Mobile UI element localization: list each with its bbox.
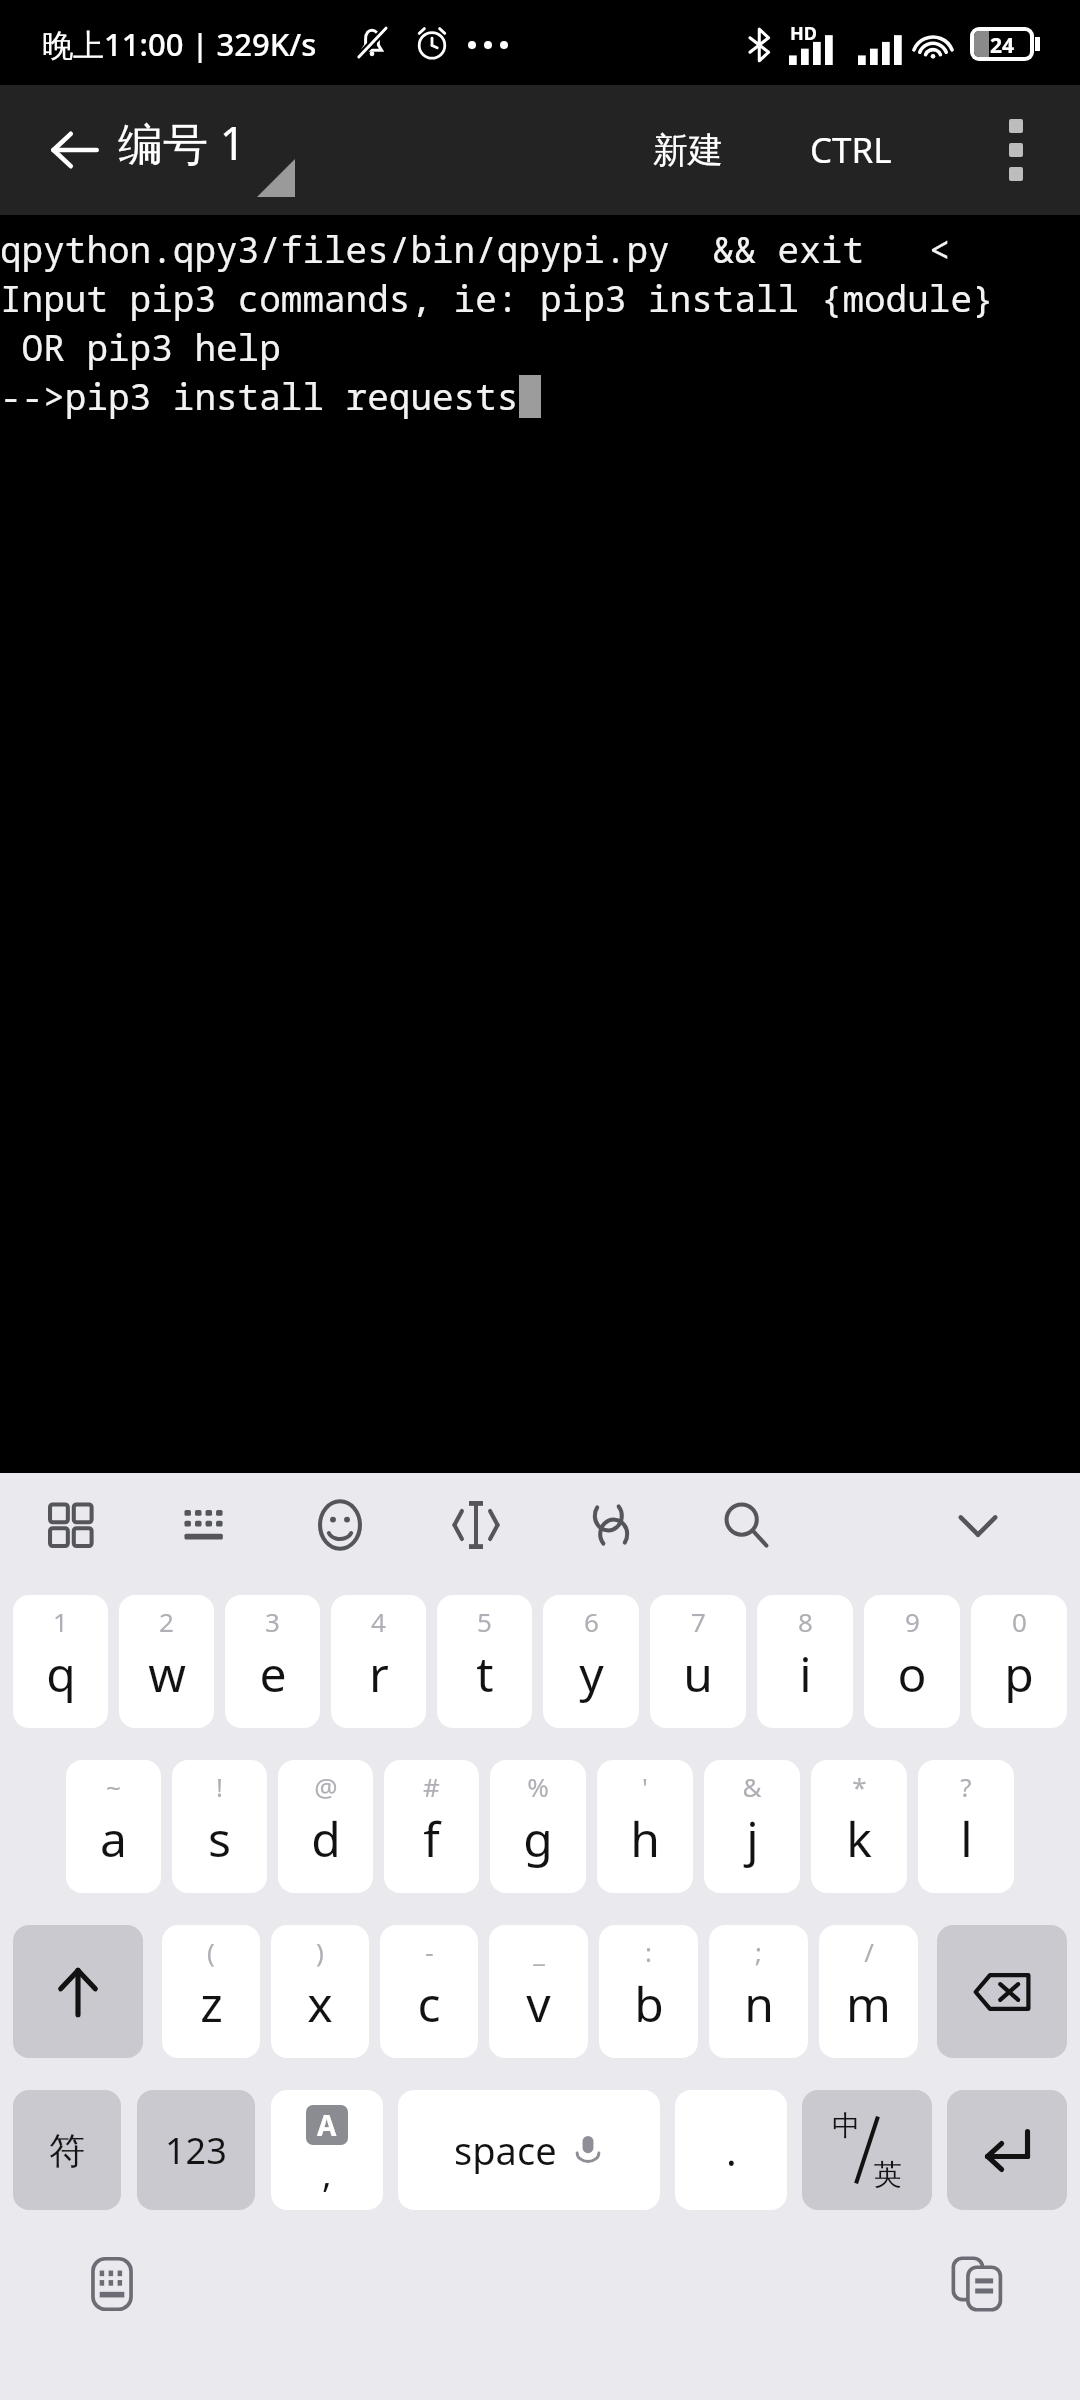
staticText: o [897, 1641, 927, 1706]
button[interactable]: A [271, 2090, 383, 2210]
button[interactable]: 5 [437, 1595, 532, 1728]
button[interactable]: Backspace [937, 1925, 1067, 2058]
button[interactable]: 3 [225, 1595, 320, 1728]
staticText: q [46, 1641, 76, 1706]
staticText: v [526, 1971, 551, 2036]
staticText: ' [642, 1769, 648, 1804]
staticText: m [846, 1971, 891, 2036]
staticText: l [960, 1806, 973, 1871]
staticText: w [148, 1641, 186, 1706]
staticText: i [799, 1641, 812, 1706]
button[interactable]: ! [172, 1760, 267, 1893]
staticText: g [523, 1806, 553, 1871]
button[interactable]: Keyboard [157, 1477, 253, 1573]
button[interactable]: Shift [13, 1925, 143, 2058]
button[interactable]: Clipboard [563, 1477, 659, 1573]
staticText: : [645, 1934, 652, 1969]
button[interactable]: 符 [13, 2090, 121, 2210]
staticText: e [259, 1641, 287, 1706]
staticText: ; [755, 1934, 762, 1969]
staticText: CTRL [810, 126, 892, 174]
button[interactable]: - [380, 1925, 478, 2058]
staticText: qpython.qpy3/files/bin/qpypi.py && exit … [0, 225, 951, 274]
staticText: 新建 [653, 128, 723, 172]
staticText: z [200, 1971, 223, 2036]
button[interactable]: Switch keyboard [64, 2236, 160, 2332]
button[interactable]: ~ [66, 1760, 161, 1893]
button[interactable]: Apps [22, 1477, 118, 1573]
staticText: 中 [832, 2108, 860, 2143]
staticText: Input pip3 commands, ie: pip3 install {m… [0, 274, 994, 323]
staticText: 24 [990, 31, 1015, 57]
button[interactable]: ( [162, 1925, 260, 2058]
button[interactable]: & [704, 1760, 800, 1893]
staticText: @ [314, 1769, 338, 1804]
button[interactable]: @ [278, 1760, 373, 1893]
staticText: d [311, 1806, 341, 1871]
staticText: 英 [874, 2157, 902, 2192]
staticText: # [423, 1769, 440, 1804]
staticText: a [100, 1806, 127, 1871]
staticText: 3 [265, 1604, 280, 1639]
button[interactable]: Clipboard [930, 2236, 1026, 2332]
staticText: j [746, 1806, 759, 1871]
button[interactable]: ) [271, 1925, 369, 2058]
button[interactable]: 7 [650, 1595, 746, 1728]
button[interactable]: 0 [971, 1595, 1067, 1728]
button[interactable]: Hide keyboard [930, 1477, 1026, 1573]
button[interactable]: 2 [119, 1595, 214, 1728]
button[interactable]: # [384, 1760, 479, 1893]
button[interactable]: space [398, 2090, 660, 2210]
button[interactable]: CTRL [776, 85, 926, 215]
button[interactable]: 123 [137, 2090, 255, 2210]
button[interactable]: ? [918, 1760, 1014, 1893]
staticText: ( [207, 1934, 215, 1969]
staticText: s [208, 1806, 231, 1871]
staticText: k [846, 1806, 872, 1871]
staticText: y [579, 1641, 604, 1706]
button[interactable]: Text edit [428, 1477, 524, 1573]
staticText: & [742, 1769, 762, 1804]
button[interactable]: ; [709, 1925, 808, 2058]
staticText: 9 [905, 1604, 920, 1639]
button[interactable]: ' [597, 1760, 693, 1893]
staticText: ? [960, 1769, 972, 1804]
staticText: - [425, 1934, 434, 1969]
staticText: p [1004, 1641, 1034, 1706]
button[interactable]: Emoji [292, 1477, 388, 1573]
button[interactable]: More options [968, 102, 1064, 198]
staticText: / [864, 1934, 874, 1969]
button[interactable]: : [599, 1925, 698, 2058]
button[interactable]: 4 [331, 1595, 426, 1728]
staticText: ! [216, 1769, 223, 1804]
staticText: r [369, 1641, 389, 1706]
button[interactable]: 9 [864, 1595, 960, 1728]
button[interactable]: % [490, 1760, 586, 1893]
staticText: f [423, 1806, 440, 1871]
staticText: _ [533, 1934, 545, 1969]
button[interactable]: 8 [757, 1595, 853, 1728]
button[interactable]: _ [489, 1925, 588, 2058]
button[interactable]: Enter [947, 2090, 1067, 2210]
button[interactable]: Back [26, 102, 122, 198]
button[interactable]: * [811, 1760, 907, 1893]
button[interactable]: 6 [543, 1595, 639, 1728]
staticText: 5 [477, 1604, 492, 1639]
staticText: . [726, 2123, 737, 2177]
staticText: n [744, 1971, 774, 2036]
button[interactable]: / [819, 1925, 918, 2058]
staticText: b [634, 1971, 664, 2036]
button[interactable]: 中 [802, 2090, 932, 2210]
staticText: 0 [1012, 1604, 1027, 1639]
button[interactable]: . [675, 2090, 787, 2210]
staticText: ) [316, 1934, 324, 1969]
staticText: 编号 1 [118, 112, 246, 173]
staticText: * [852, 1769, 867, 1804]
staticText: 2 [159, 1604, 174, 1639]
button[interactable]: 新建 [628, 85, 748, 215]
staticText: t [476, 1641, 494, 1706]
button[interactable]: Search [698, 1477, 794, 1573]
staticText: A [317, 2106, 337, 2144]
staticText: 8 [798, 1604, 813, 1639]
button[interactable]: 1 [13, 1595, 108, 1728]
